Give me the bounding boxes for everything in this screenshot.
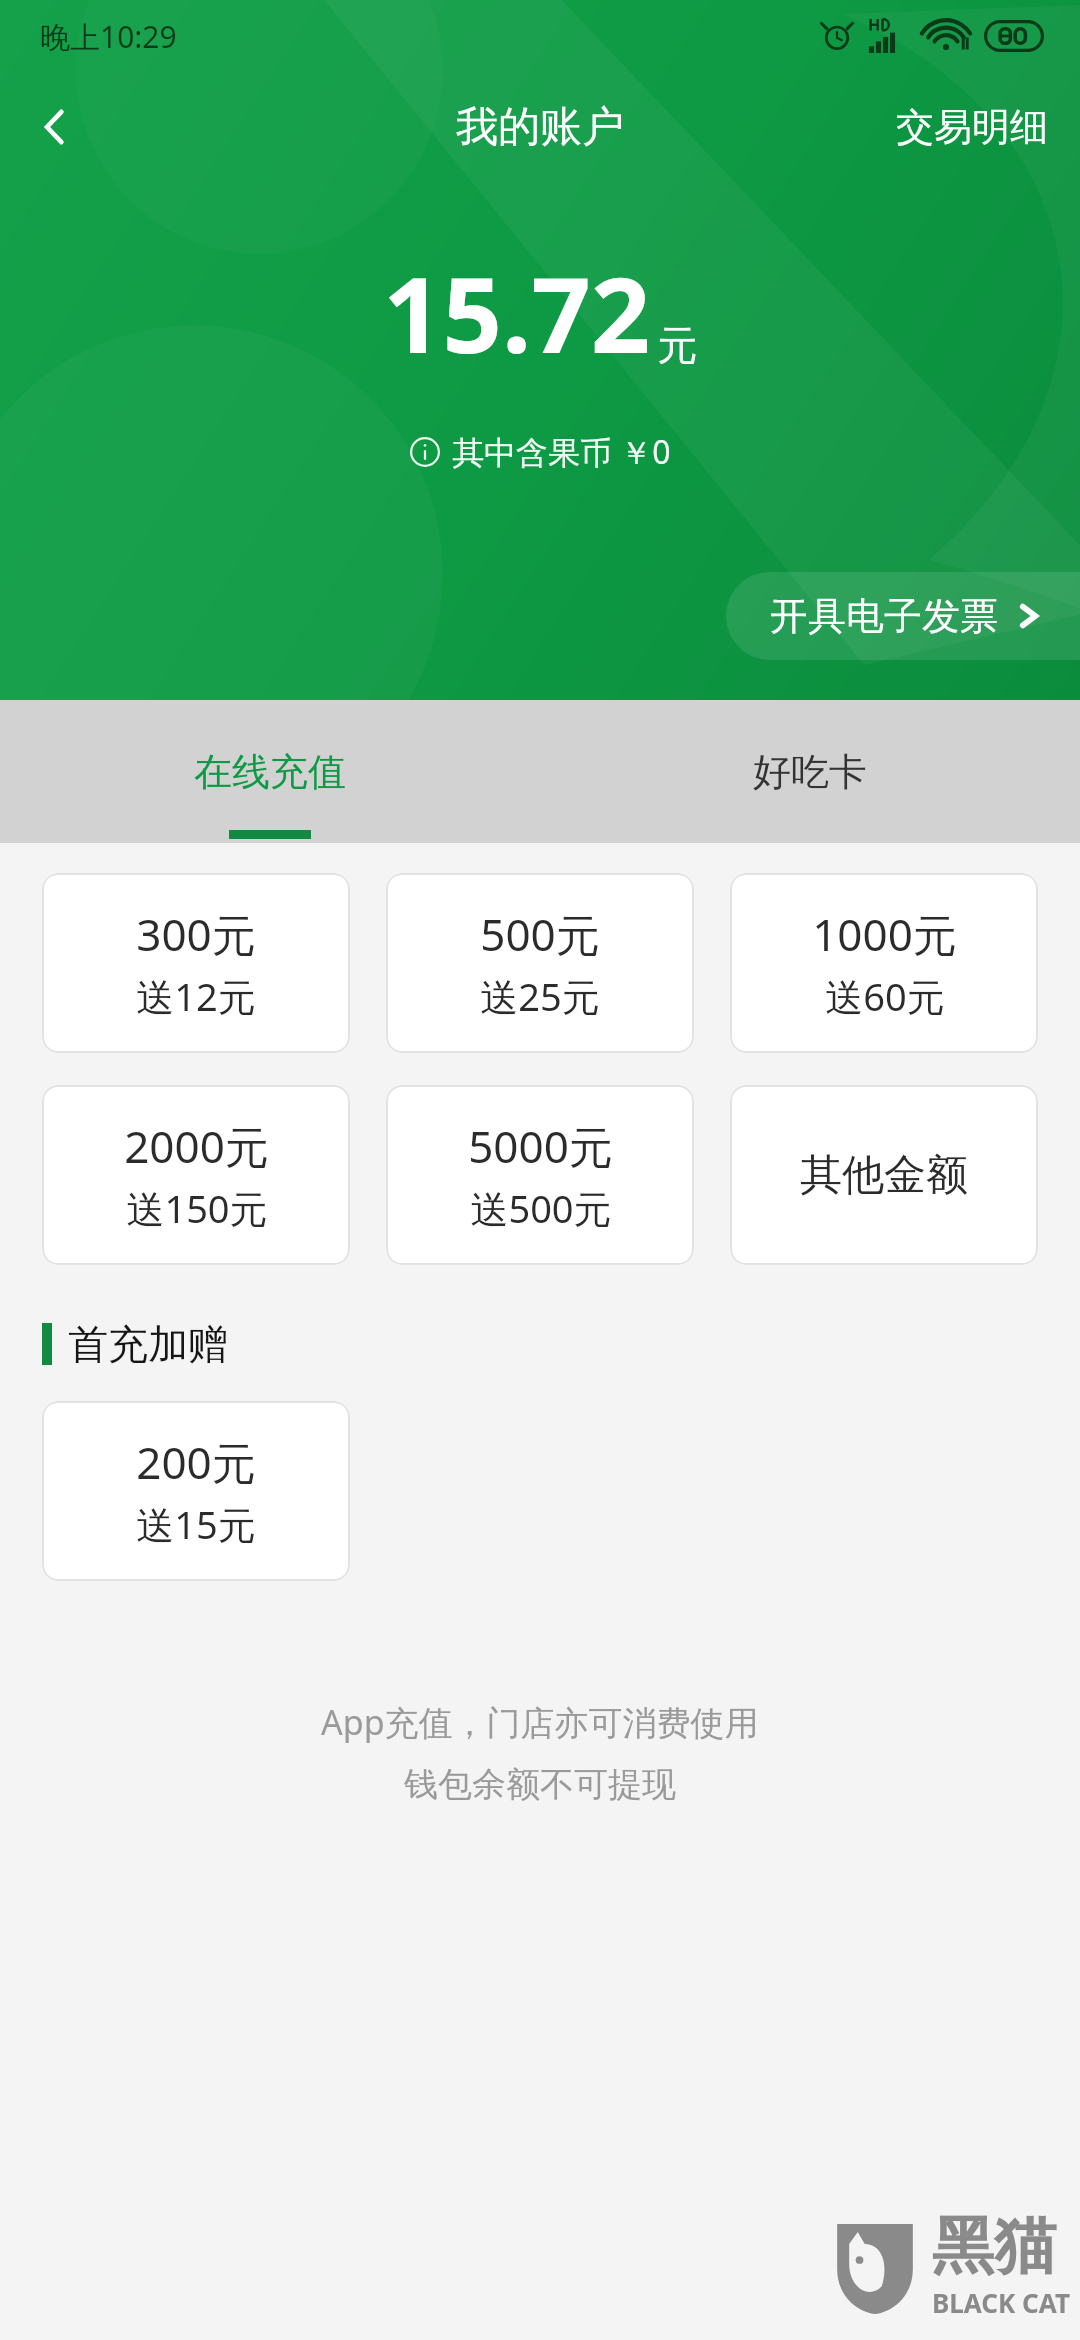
staticText: 黑猫 [932,2207,1056,2285]
staticText: 5000元 [468,1116,613,1176]
staticText: 300元 [136,904,256,964]
staticText: 送25元 [480,970,600,1022]
staticText: BLACK CAT [932,2285,1070,2320]
staticText: 200元 [136,1432,256,1492]
staticText: 钱包余额不可提现 [404,1763,676,1806]
staticText: 好吃卡 [753,748,867,796]
staticText: App充值，门店亦可消费使用 [321,1699,759,1745]
staticText: 1000元 [812,904,957,964]
staticText: 在线充值 [194,748,346,796]
staticText: 500元 [480,904,600,964]
staticText: 2000元 [124,1116,269,1176]
button[interactable]: 在线充值 [0,700,540,843]
staticText: 15.72 [383,242,651,384]
staticText: 送15元 [136,1498,256,1550]
staticText: 开具电子发票 [770,592,998,640]
button[interactable]: 200元 [42,1401,350,1581]
button[interactable]: Back [0,72,110,182]
staticText: 晚上10:29 [40,16,177,57]
staticText: 我的账户 [456,101,624,154]
staticText: 其他金额 [800,1149,968,1202]
button[interactable]: 2000元 [42,1085,350,1265]
staticText: 首充加赠 [68,1319,228,1369]
staticText: 送500元 [470,1182,612,1234]
staticText: 元 [657,320,697,370]
staticText: 送150元 [126,1182,268,1234]
button[interactable]: 500元 [386,873,694,1053]
button[interactable]: 其他金额 [730,1085,1038,1265]
staticText: 送12元 [136,970,256,1022]
button[interactable]: 交易明细 [864,83,1080,171]
staticText: 送60元 [825,970,945,1022]
button[interactable]: 5000元 [386,1085,694,1265]
button[interactable]: 好吃卡 [540,700,1080,843]
button[interactable]: 1000元 [730,873,1038,1053]
button[interactable]: 300元 [42,873,350,1053]
button[interactable]: 开具电子发票 [726,572,1080,660]
staticText: 其中含果币 ￥0 [452,430,671,474]
staticText: 交易明细 [896,103,1048,151]
button[interactable]: 其中含果币 ￥0 [390,422,691,482]
